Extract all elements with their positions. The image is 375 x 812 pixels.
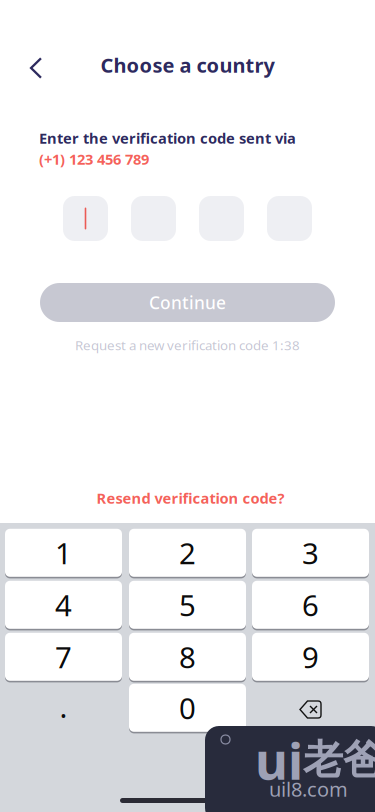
staticText: 7	[55, 637, 72, 676]
staticText: 2	[179, 533, 196, 572]
button[interactable]: 8	[129, 632, 246, 682]
staticText: .	[59, 687, 67, 726]
staticText: 4	[55, 585, 72, 624]
staticText: 5	[179, 585, 196, 624]
button[interactable]: Period	[5, 683, 122, 730]
button[interactable]: 2	[129, 528, 246, 578]
button[interactable]: 5	[129, 580, 246, 630]
button[interactable]: Back	[14, 46, 58, 90]
button[interactable]: 3	[252, 528, 369, 578]
staticText: uil8.com	[269, 776, 348, 802]
staticText: (+1) 123 456 789	[39, 149, 149, 169]
staticText: 6	[302, 585, 319, 624]
staticText: Continue	[149, 291, 226, 314]
staticText: Enter the verification code sent via	[39, 128, 296, 148]
button[interactable]: 4	[5, 580, 122, 630]
staticText: ui	[255, 726, 303, 794]
staticText: 0	[179, 688, 196, 727]
button[interactable]: 6	[252, 580, 369, 630]
button[interactable]: 1	[5, 528, 122, 578]
button[interactable]: Continue	[40, 283, 335, 322]
staticText: 1	[55, 533, 72, 572]
staticText: 3	[302, 533, 319, 572]
button[interactable]: Delete	[252, 683, 369, 730]
button[interactable]: Resend verification code?	[3, 487, 375, 509]
staticText: Request a new verification code 1:38	[75, 336, 300, 354]
button[interactable]: 9	[252, 632, 369, 682]
button[interactable]: 0	[129, 683, 246, 733]
staticText: 8	[179, 637, 196, 676]
staticText: Choose a country	[100, 52, 274, 78]
staticText: 9	[302, 637, 319, 676]
button[interactable]: 7	[5, 632, 122, 682]
staticText: Resend verification code?	[96, 488, 284, 508]
staticText: 老爸	[303, 735, 375, 784]
